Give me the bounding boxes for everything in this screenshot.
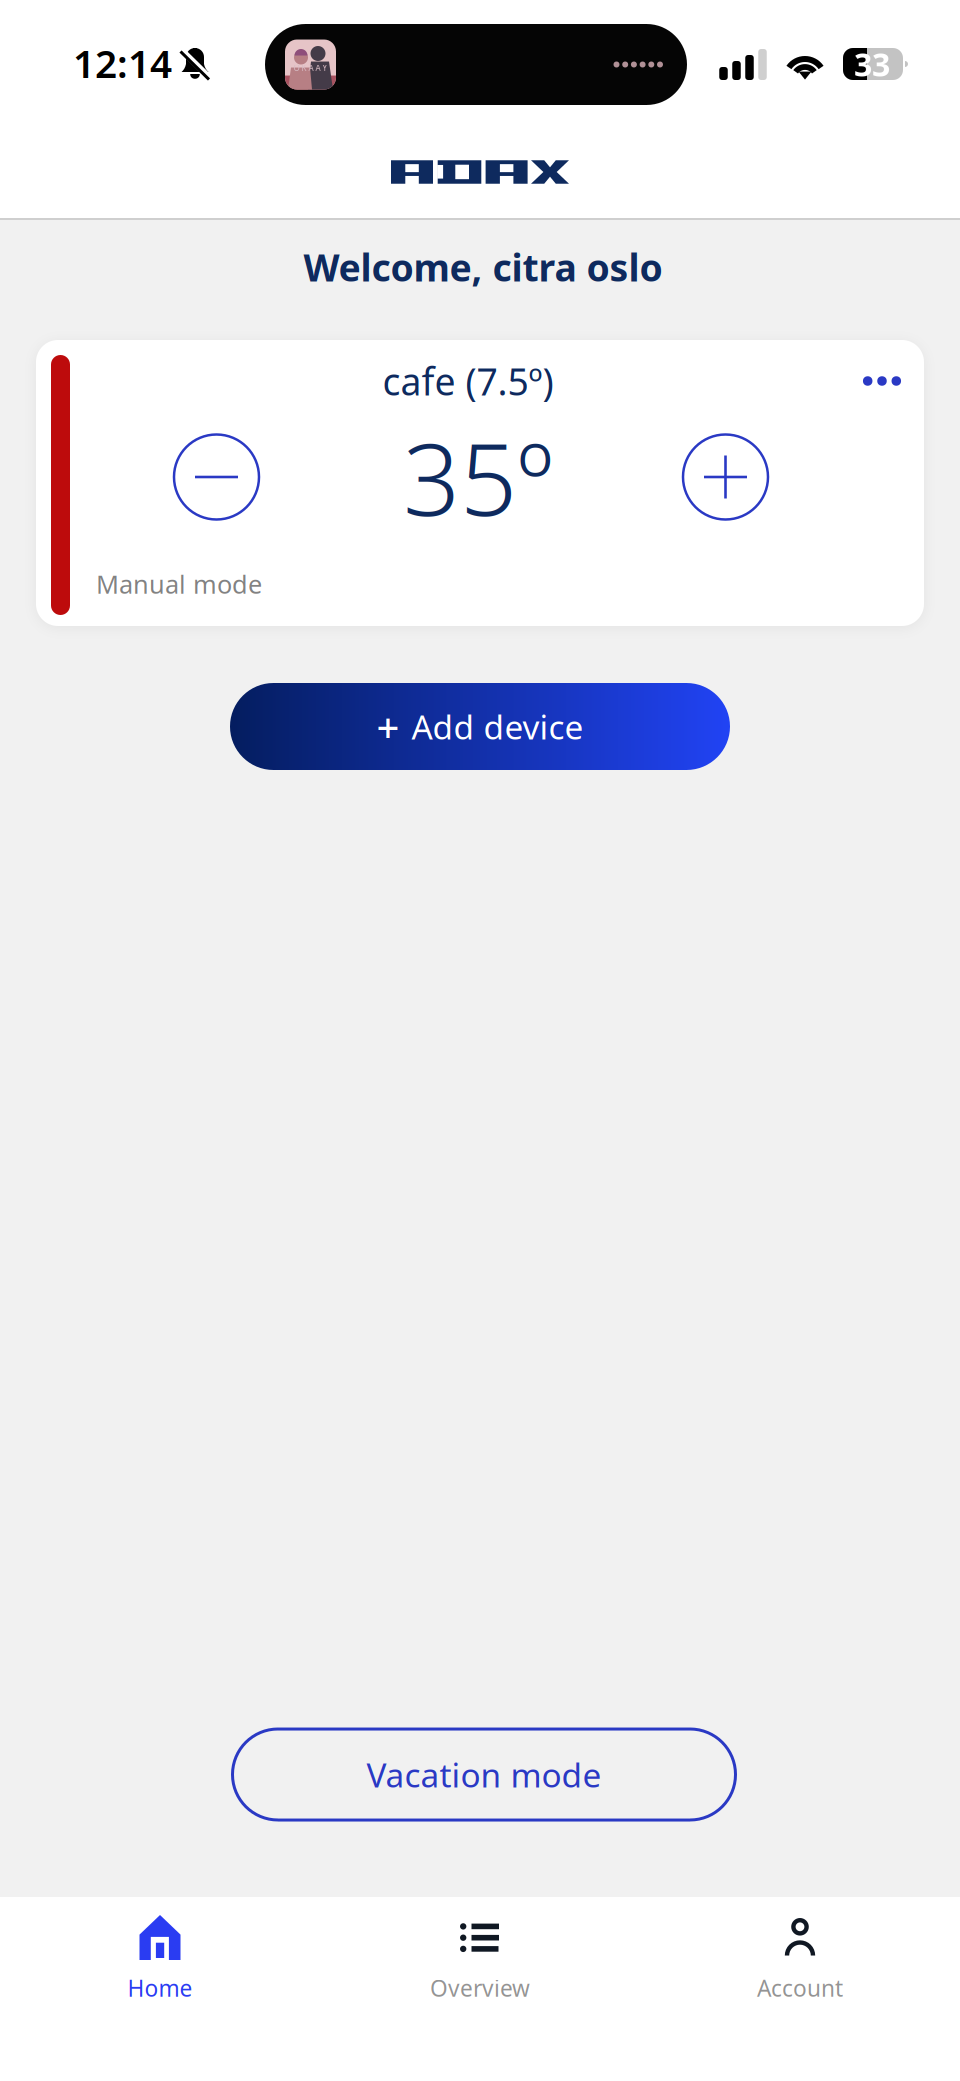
button[interactable]: Home xyxy=(0,1897,320,2081)
staticText: Vacation mode xyxy=(366,1752,601,1797)
button[interactable]: Decrease temperature xyxy=(174,434,259,519)
staticText: + xyxy=(376,700,399,753)
staticText: Add device xyxy=(411,704,583,749)
button[interactable]: Vacation mode xyxy=(228,1729,731,1820)
staticText: 35º xyxy=(403,411,553,543)
staticText: 12:14 xyxy=(73,37,172,89)
staticText: O K A A Y xyxy=(293,62,327,73)
staticText: Overview xyxy=(430,1973,530,2003)
staticText: 33 xyxy=(854,43,890,85)
button[interactable]: Account xyxy=(640,1897,960,2081)
button[interactable]: Increase temperature xyxy=(683,434,768,519)
staticText: cafe (7.5º) xyxy=(382,356,553,406)
staticText: Manual mode xyxy=(96,567,262,601)
staticText: Account xyxy=(757,1973,843,2003)
staticText: Home xyxy=(127,1973,192,2003)
staticText: Welcome, citra oslo xyxy=(303,242,662,292)
button[interactable]: + xyxy=(230,683,730,770)
button[interactable]: More options xyxy=(843,348,921,414)
button[interactable]: Overview xyxy=(320,1897,640,2081)
